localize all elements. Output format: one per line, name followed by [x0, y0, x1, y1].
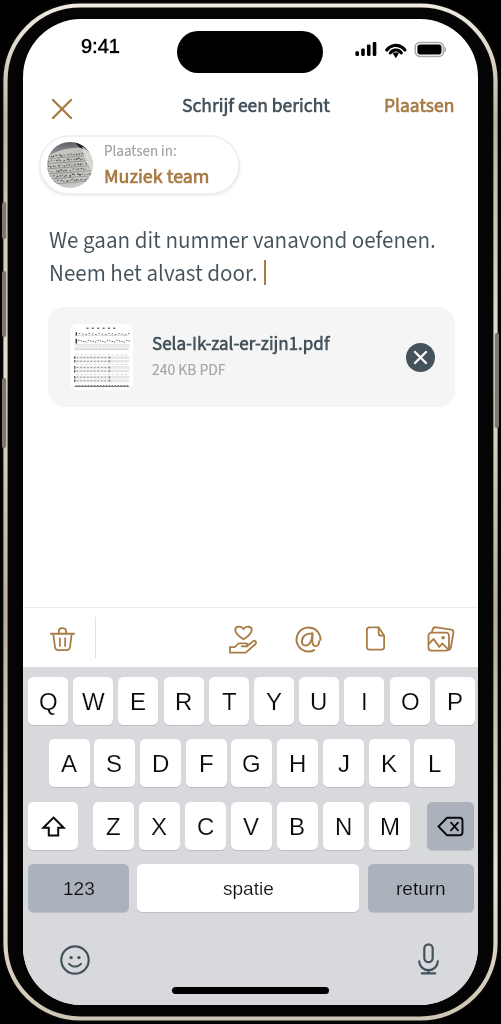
button[interactable]: Y	[254, 677, 294, 725]
staticText: L	[428, 750, 442, 777]
staticText: Neem het alvast door.	[49, 257, 258, 290]
staticText: H	[289, 750, 307, 777]
button[interactable]: Sela-Ik-zal-er-zijn1.pdf	[48, 307, 455, 407]
staticText: Y	[266, 688, 283, 715]
button[interactable]: Plaatsen in:	[40, 136, 239, 194]
button[interactable]: return	[368, 864, 474, 912]
staticText: D	[152, 750, 170, 777]
staticText: X	[151, 813, 168, 840]
staticText: Plaatsen in:	[104, 141, 177, 162]
button[interactable]: E	[118, 677, 158, 725]
staticText: V	[243, 813, 260, 840]
staticText: Sela-Ik-zal-er-zijn1.pdf	[152, 331, 330, 358]
button[interactable]: C	[185, 802, 226, 850]
button[interactable]: Z	[93, 802, 134, 850]
button[interactable]: G	[231, 739, 272, 787]
button[interactable]: Sluiten	[38, 85, 85, 132]
button[interactable]: O	[390, 677, 430, 725]
button[interactable]: S	[94, 739, 135, 787]
staticText: spatie	[223, 878, 274, 899]
button[interactable]: Vermelden	[285, 616, 331, 662]
button[interactable]: R	[164, 677, 204, 725]
staticText: R	[175, 688, 193, 715]
button[interactable]: Q	[28, 677, 68, 725]
staticText: Schrijf een bericht	[182, 92, 330, 120]
staticText: K	[381, 750, 398, 777]
button[interactable]: Afbeelding toevoegen	[417, 615, 463, 661]
button[interactable]: M	[369, 802, 410, 850]
button[interactable]: spatie	[137, 864, 359, 912]
button[interactable]: L	[414, 739, 455, 787]
button[interactable]: A	[49, 739, 90, 787]
button[interactable]: J	[323, 739, 364, 787]
button[interactable]: T	[209, 677, 249, 725]
staticText: Muziek team	[104, 163, 210, 191]
staticText: U	[310, 688, 328, 715]
staticText: Q	[39, 688, 58, 715]
staticText: S	[106, 750, 123, 777]
button[interactable]: Backspace	[427, 802, 474, 850]
button[interactable]: D	[140, 739, 181, 787]
staticText: F	[199, 750, 214, 777]
staticText: Z	[106, 813, 121, 840]
button[interactable]: Bijlage verwijderen	[406, 343, 435, 372]
staticText: return	[396, 878, 446, 899]
staticText: I	[361, 688, 368, 715]
button[interactable]: U	[299, 677, 339, 725]
button[interactable]: V	[231, 802, 272, 850]
staticText: M	[380, 813, 400, 840]
staticText: Plaatsen	[384, 92, 455, 120]
button[interactable]: W	[73, 677, 113, 725]
staticText: G	[242, 750, 261, 777]
button[interactable]: X	[139, 802, 180, 850]
button[interactable]: Verwijderen	[39, 615, 85, 661]
staticText: We gaan dit nummer vanavond oefenen.	[49, 224, 436, 257]
staticText: T	[222, 688, 237, 715]
staticText: 123	[63, 878, 95, 899]
button[interactable]: K	[369, 739, 410, 787]
staticText: W	[82, 688, 105, 715]
staticText: B	[289, 813, 306, 840]
staticText: N	[335, 813, 353, 840]
button[interactable]: 123	[28, 864, 129, 912]
button[interactable]: Plaatsen	[378, 84, 461, 128]
button[interactable]: I	[344, 677, 384, 725]
staticText: J	[338, 750, 350, 777]
button[interactable]: B	[277, 802, 318, 850]
button[interactable]: Shift	[28, 802, 78, 850]
staticText: E	[130, 688, 147, 715]
staticText: O	[401, 688, 420, 715]
button[interactable]: H	[277, 739, 318, 787]
button[interactable]: P	[435, 677, 475, 725]
button[interactable]: N	[323, 802, 364, 850]
staticText: 9:41	[81, 35, 120, 57]
button[interactable]: F	[186, 739, 227, 787]
staticText: 240 KB PDF	[152, 359, 226, 381]
button[interactable]: Bedanken	[220, 616, 266, 662]
button[interactable]: Document toevoegen	[352, 615, 398, 661]
button[interactable]: Emoji	[53, 938, 97, 982]
staticText: P	[447, 688, 464, 715]
button[interactable]: Dicteren	[406, 937, 450, 981]
staticText: A	[61, 750, 78, 777]
staticText: C	[197, 813, 215, 840]
